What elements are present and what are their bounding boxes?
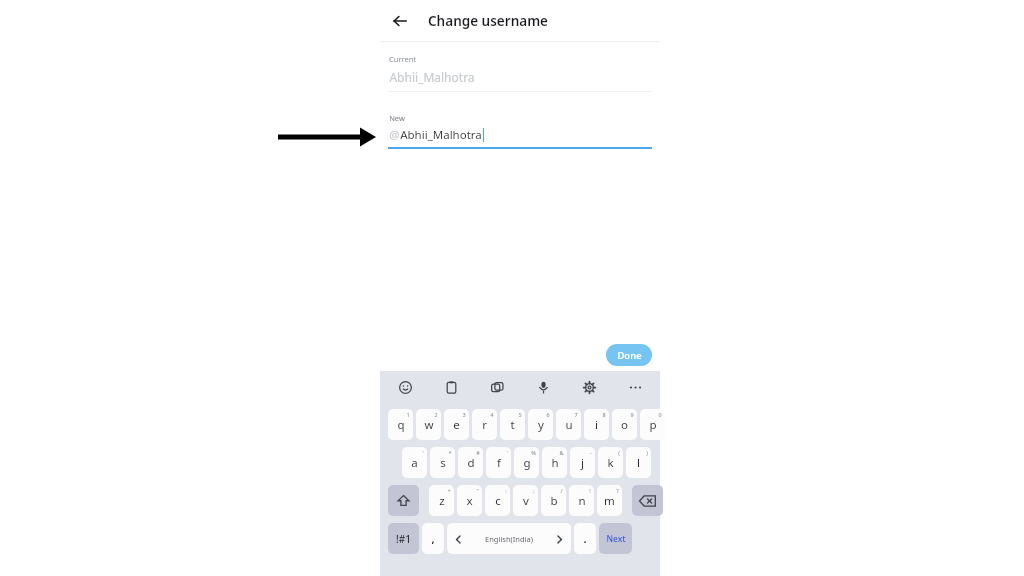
button[interactable]: p — [640, 409, 665, 440]
button[interactable]: g — [514, 447, 539, 478]
staticText: , — [431, 531, 435, 546]
staticText: 6 — [546, 411, 550, 418]
staticText: j — [581, 455, 584, 471]
button[interactable]: Done — [606, 344, 652, 366]
staticText: ( — [618, 449, 620, 456]
button[interactable]: k — [598, 447, 623, 478]
button[interactable]: English(India) — [447, 523, 571, 554]
button[interactable]: Clipboard — [439, 375, 463, 399]
staticText: t — [510, 417, 515, 433]
staticText: ! — [589, 487, 591, 494]
button[interactable]: q — [388, 409, 413, 440]
staticText: w — [424, 417, 434, 433]
staticText: 0 — [658, 411, 662, 418]
staticText: k — [607, 455, 614, 471]
staticText: 7 — [574, 411, 578, 418]
button[interactable]: Shift — [388, 485, 419, 516]
button[interactable]: r — [472, 409, 497, 440]
staticText: b — [550, 493, 558, 509]
button[interactable]: Stickers — [485, 375, 509, 399]
staticText: 3 — [462, 411, 466, 418]
staticText: English(India) — [485, 534, 533, 544]
staticText: f — [497, 455, 501, 471]
staticText: Next — [606, 533, 626, 545]
staticText: 9 — [630, 411, 634, 418]
button[interactable]: h — [542, 447, 567, 478]
button[interactable]: j — [570, 447, 595, 478]
button[interactable]: l — [626, 447, 651, 478]
button[interactable]: m — [597, 485, 622, 516]
staticText: % — [531, 449, 536, 456]
staticText: 2 — [434, 411, 438, 418]
button[interactable]: w — [416, 409, 441, 440]
staticText: z — [439, 493, 445, 509]
staticText: p — [649, 417, 657, 433]
staticText: * — [448, 449, 452, 456]
button[interactable]: Back — [386, 7, 414, 35]
staticText: v — [523, 493, 529, 509]
staticText: l — [637, 455, 640, 471]
staticText: # — [476, 449, 480, 456]
button[interactable]: f — [486, 447, 511, 478]
staticText: u — [565, 417, 573, 433]
staticText: x — [466, 493, 473, 509]
staticText: 4 — [490, 411, 494, 418]
button[interactable]: a — [402, 447, 427, 478]
button[interactable]: Backspace — [632, 485, 663, 516]
button[interactable]: Voice input — [531, 375, 555, 399]
staticText: s — [440, 455, 446, 471]
staticText: ? — [616, 487, 619, 494]
staticText: ; — [533, 487, 535, 494]
staticText: e — [453, 417, 460, 433]
button[interactable]: y — [528, 409, 553, 440]
button[interactable]: n — [569, 485, 594, 516]
button[interactable]: u — [556, 409, 581, 440]
button[interactable]: o — [612, 409, 637, 440]
button[interactable]: Next — [599, 523, 632, 554]
button[interactable]: b — [541, 485, 566, 516]
button[interactable]: Keyboard settings — [577, 375, 601, 399]
staticText: i — [595, 417, 598, 433]
staticText: @ — [389, 127, 400, 143]
button[interactable]: Emoji — [393, 375, 417, 399]
staticText: ' — [506, 449, 508, 456]
staticText: Abhii_Malhotra — [389, 69, 475, 85]
staticText: ' — [422, 449, 424, 456]
staticText: Current — [389, 54, 416, 64]
staticText: y — [538, 417, 544, 433]
button[interactable]: c — [485, 485, 510, 516]
staticText: !#1 — [396, 532, 411, 546]
staticText: 5 — [518, 411, 522, 418]
staticText: m — [604, 493, 615, 509]
staticText: q — [397, 417, 405, 433]
button[interactable]: t — [500, 409, 525, 440]
staticText: & — [559, 449, 564, 456]
staticText: 8 — [602, 411, 606, 418]
button[interactable]: d — [458, 447, 483, 478]
staticText: New — [389, 113, 405, 123]
staticText: Abhii_Malhotra — [400, 127, 482, 143]
button[interactable]: , — [422, 523, 444, 554]
staticText: d — [467, 455, 475, 471]
button[interactable]: s — [430, 447, 455, 478]
button[interactable]: !#1 — [388, 523, 419, 554]
button[interactable]: More options — [623, 375, 647, 399]
staticText: - — [590, 449, 592, 456]
staticText: a — [411, 455, 418, 471]
staticText: o — [621, 417, 628, 433]
button[interactable]: e — [444, 409, 469, 440]
staticText: n — [578, 493, 586, 509]
staticText: . — [583, 531, 587, 546]
button[interactable]: z — [429, 485, 454, 516]
staticText: r — [482, 417, 487, 433]
staticText: g — [523, 455, 531, 471]
button[interactable]: i — [584, 409, 609, 440]
staticText: " — [476, 487, 479, 494]
button[interactable]: x — [457, 485, 482, 516]
staticText: Change username — [428, 12, 548, 30]
staticText: 1 — [406, 411, 410, 418]
button[interactable]: v — [513, 485, 538, 516]
staticText: + — [447, 487, 451, 494]
staticText: Done — [617, 349, 642, 362]
button[interactable]: . — [574, 523, 596, 554]
